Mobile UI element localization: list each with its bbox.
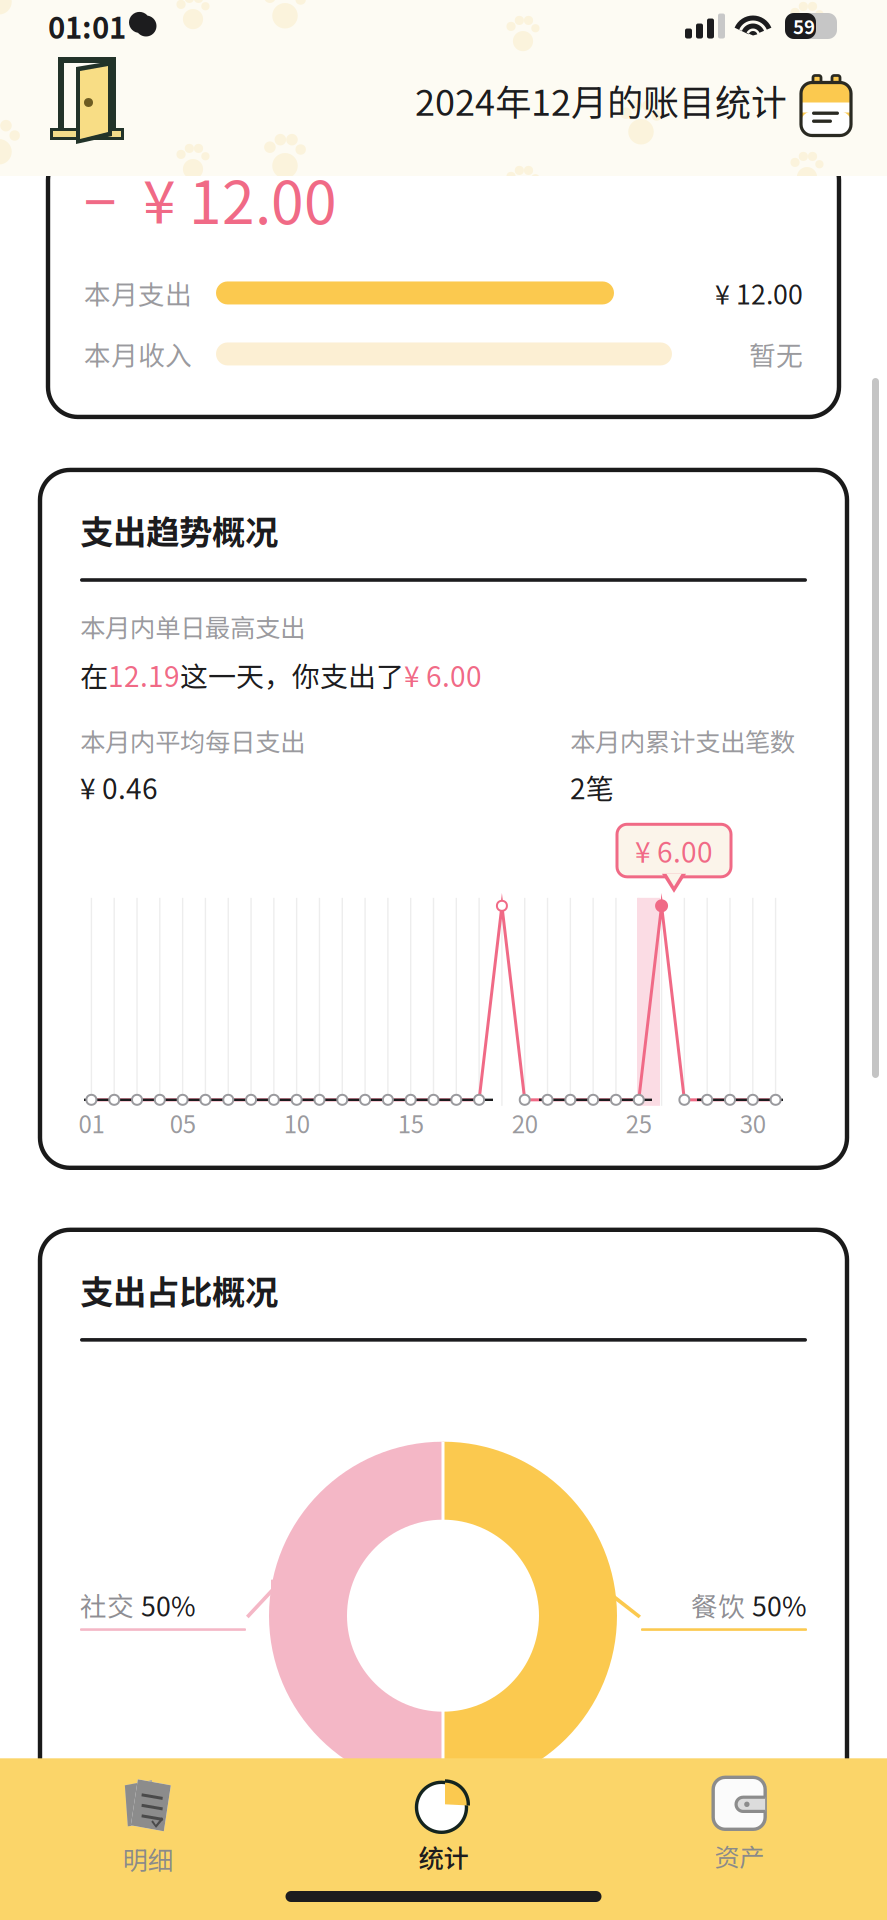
staticText: 10	[284, 1105, 310, 1140]
button[interactable]: Pick month	[787, 67, 887, 133]
staticText: 餐饮	[691, 1586, 745, 1624]
staticText: ¥ 12.00	[715, 274, 803, 312]
staticText: 本月支出	[84, 274, 192, 312]
staticText: 20	[512, 1105, 538, 1140]
staticText: 本月内累计支出笔数	[570, 722, 795, 759]
staticText: ¥ 6.00	[635, 830, 713, 871]
staticText: 50%	[141, 1586, 196, 1624]
staticText: ¥ 0.46	[80, 767, 158, 807]
staticText: 在	[80, 654, 108, 695]
button[interactable]: 资产	[591, 1761, 887, 1874]
staticText: 支出趋势概况	[80, 506, 278, 554]
staticText: ¥ 6.00	[404, 654, 482, 695]
staticText: 本月收入	[84, 335, 192, 373]
staticText: 12.19	[108, 654, 180, 695]
staticText: 支出占比概况	[80, 1266, 278, 1314]
staticText: 05	[170, 1105, 196, 1140]
staticText: − ¥ 12.00	[84, 156, 337, 241]
staticText: 15	[398, 1105, 424, 1140]
staticText: 本月内平均每日支出	[80, 722, 305, 759]
staticText: 社交	[80, 1586, 134, 1624]
button[interactable]: 明细	[0, 1758, 296, 1877]
staticText: 这一天，你支出了	[180, 654, 404, 695]
staticText: 2024年12月的账目统计	[415, 74, 787, 126]
staticText: 30	[740, 1105, 766, 1140]
button[interactable]: Exit	[0, 54, 140, 146]
staticText: 59	[793, 12, 815, 39]
staticText: 明细	[123, 1840, 173, 1877]
staticText: 暂无	[749, 335, 803, 373]
staticText: 2笔	[570, 767, 614, 807]
button[interactable]: 统计	[296, 1760, 591, 1875]
staticText: 本月内单日最高支出	[80, 608, 305, 644]
staticText: 资产	[714, 1837, 764, 1874]
staticText: 25	[626, 1105, 652, 1140]
staticText: 01:01	[48, 5, 126, 47]
staticText: 50%	[752, 1586, 807, 1624]
staticText: 统计	[418, 1838, 468, 1875]
staticText: 01	[78, 1105, 104, 1140]
